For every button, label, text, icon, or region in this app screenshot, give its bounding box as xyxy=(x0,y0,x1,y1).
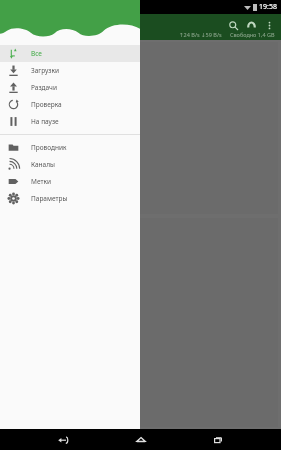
staticText: Параметры xyxy=(31,194,68,203)
staticText: Проводник xyxy=(31,143,67,152)
staticText: Загрузки xyxy=(31,66,59,75)
staticText: Проверка xyxy=(31,100,62,109)
staticText: Каналы xyxy=(31,160,55,169)
button[interactable]: Search xyxy=(224,16,242,34)
button[interactable]: Метки xyxy=(0,173,140,190)
button[interactable]: Загрузки xyxy=(0,62,140,79)
staticText: Раздачи xyxy=(31,83,57,92)
staticText: торренты xyxy=(5,73,43,84)
staticText: ↑24 B/s ↓59 B/s xyxy=(179,31,222,38)
button[interactable]: Back xyxy=(48,429,78,450)
button[interactable]: Home xyxy=(126,429,156,450)
staticText: Все xyxy=(31,49,42,58)
staticText: На паузе xyxy=(31,117,59,126)
button[interactable]: Параметры xyxy=(0,190,140,207)
button[interactable]: More options xyxy=(260,16,278,34)
button[interactable]: Проверка xyxy=(0,96,140,113)
staticText: Метки xyxy=(31,177,51,186)
staticText: 19:58 xyxy=(259,2,277,12)
button[interactable]: Проводник xyxy=(0,139,140,156)
button[interactable]: Каналы xyxy=(0,156,140,173)
button[interactable]: Все xyxy=(0,45,140,62)
button[interactable]: Раздачи xyxy=(0,79,140,96)
button[interactable]: На паузе xyxy=(0,113,140,130)
staticText: Свободно 1,4 GB xyxy=(230,31,275,38)
button[interactable]: Magnet xyxy=(242,16,260,34)
button[interactable]: Recents xyxy=(203,429,233,450)
